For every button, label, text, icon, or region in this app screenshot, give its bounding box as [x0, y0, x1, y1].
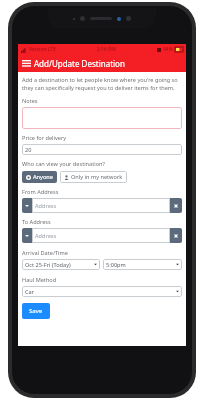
staticText: 2:16 PM	[97, 46, 116, 53]
staticText: 44%	[163, 46, 173, 53]
staticText: Address	[35, 202, 57, 210]
staticText: Oct 25-Fri (Today)	[25, 261, 71, 269]
staticText: Address	[35, 232, 57, 240]
staticText: To Address	[22, 218, 51, 226]
staticText: Add a destination to let people know whe…	[22, 76, 182, 92]
button[interactable]: Anyone	[22, 171, 57, 183]
staticText: 20	[25, 146, 32, 154]
button[interactable]: Clear address	[170, 198, 182, 213]
staticText: Save	[29, 307, 43, 315]
button[interactable]: 5:00pm	[103, 259, 182, 270]
button[interactable]: 20	[22, 144, 182, 155]
button[interactable]: Save	[22, 303, 50, 319]
button[interactable]: Oct 25-Fri (Today)	[22, 259, 100, 270]
staticText: Who can view your destination?	[22, 160, 105, 168]
button[interactable]	[22, 107, 182, 129]
staticText: Add/Update Destination	[34, 58, 125, 69]
staticText: Verizon LTE	[29, 46, 56, 53]
button[interactable]: Address	[32, 228, 170, 243]
staticText: Notes	[22, 97, 38, 105]
button[interactable]: Address	[32, 198, 170, 213]
staticText: Arrival Date/Time	[22, 249, 68, 257]
staticText: Car	[25, 288, 34, 296]
button[interactable]: Choose saved address	[22, 228, 32, 243]
staticText: Anyone	[33, 173, 53, 181]
staticText: Haul Method	[22, 276, 57, 284]
button[interactable]: Only in my network	[60, 171, 127, 183]
staticText: Price for delivery	[22, 134, 67, 142]
button[interactable]: Car	[22, 286, 182, 297]
button[interactable]: Open navigation menu	[22, 55, 31, 72]
button[interactable]: Clear address	[170, 228, 182, 243]
staticText: 5:00pm	[106, 261, 126, 269]
button[interactable]: Choose saved address	[22, 198, 32, 213]
staticText: Only in my network	[71, 173, 123, 181]
staticText: From Address	[22, 188, 59, 196]
